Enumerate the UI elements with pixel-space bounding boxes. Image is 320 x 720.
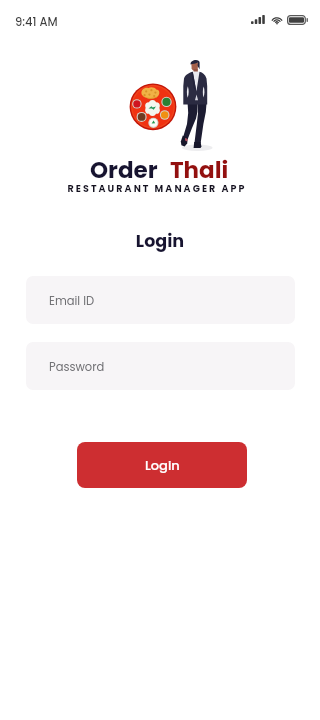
- staticText: Login: [145, 456, 180, 474]
- staticText: Thali: [170, 154, 229, 186]
- button[interactable]: Email ID: [26, 276, 295, 324]
- staticText: Email ID: [49, 293, 95, 309]
- other: Wi-Fi: [271, 15, 283, 24]
- staticText: Login: [0, 229, 320, 254]
- other: Battery: [287, 15, 308, 25]
- staticText: RESTAURANT MANAGER APP: [0, 182, 317, 195]
- other: Cellular signal strength: [251, 15, 266, 24]
- button[interactable]: Login: [77, 442, 247, 488]
- button[interactable]: Password: [26, 342, 295, 390]
- staticText: Order: [90, 154, 158, 186]
- staticText: Password: [49, 359, 105, 375]
- staticText: 9:41 AM: [15, 14, 58, 30]
- other: Order Thali logo: [126, 56, 216, 152]
